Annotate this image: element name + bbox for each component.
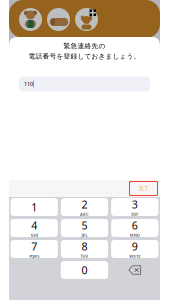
staticText: TUV	[80, 253, 88, 259]
staticText: 4	[31, 218, 37, 232]
button[interactable]: 1	[11, 198, 58, 216]
staticText: DEF	[131, 211, 138, 217]
staticText: 8	[81, 239, 87, 253]
button[interactable]: 9	[111, 240, 158, 258]
button[interactable]: 7	[11, 240, 58, 258]
staticText: 0	[81, 263, 87, 277]
staticText: 緊急連絡先の	[63, 42, 105, 50]
button[interactable]: 2	[61, 198, 108, 216]
button[interactable]: 6	[111, 219, 158, 237]
staticText: 完了	[138, 185, 148, 192]
staticText: 5	[81, 218, 87, 232]
staticText: 電話番号を登録しておきましょう。	[28, 52, 140, 60]
staticText: 2	[81, 197, 87, 211]
button[interactable]: 4	[11, 219, 58, 237]
staticText: 110	[24, 80, 33, 87]
staticText: MNO	[130, 232, 140, 238]
button[interactable]: Pet 2	[47, 8, 70, 31]
button[interactable]: 3	[111, 198, 158, 216]
button[interactable]: 0	[61, 261, 108, 279]
staticText: GHI	[31, 232, 38, 238]
button[interactable]: 5	[61, 219, 108, 237]
staticText: PQRS	[29, 253, 39, 259]
staticText: 3	[132, 197, 138, 211]
staticText: ABC	[80, 211, 89, 217]
staticText: 7	[31, 239, 37, 253]
button[interactable]: Add pet	[75, 8, 98, 31]
button[interactable]: 完了	[129, 181, 158, 196]
button[interactable]: 8	[61, 240, 108, 258]
staticText: 1	[31, 200, 37, 214]
staticText: JKL	[81, 232, 87, 238]
staticText: WXYZ	[129, 253, 140, 259]
staticText: 6	[132, 218, 138, 232]
button[interactable]: Delete	[111, 261, 158, 279]
staticText: 9	[132, 239, 138, 253]
button[interactable]: Pet 1	[19, 8, 42, 31]
